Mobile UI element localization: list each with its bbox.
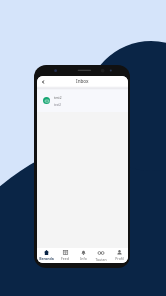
button[interactable]: Feed [56, 248, 74, 263]
staticText: test2 [54, 96, 62, 100]
button[interactable]: test2 [37, 90, 128, 112]
staticText: Beranda [39, 256, 54, 261]
staticText: Profil [115, 256, 124, 261]
button[interactable]: Back [39, 78, 46, 85]
button[interactable]: Beranda [37, 248, 56, 263]
staticText: Inbox [76, 78, 89, 84]
staticText: Feed [61, 256, 69, 261]
button[interactable]: Tautan [92, 248, 110, 263]
staticText: Info [80, 256, 87, 261]
button[interactable]: Profil [110, 248, 128, 263]
staticText: Tautan [95, 257, 107, 262]
button[interactable]: Info [74, 248, 92, 263]
staticText: test2 [54, 103, 62, 107]
